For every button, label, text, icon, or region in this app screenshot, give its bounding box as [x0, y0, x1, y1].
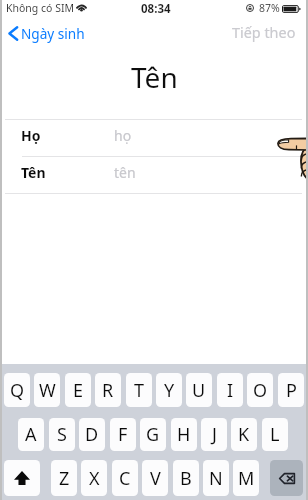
staticText: B	[180, 466, 192, 491]
button[interactable]: H	[171, 418, 197, 451]
staticText: tên	[114, 163, 136, 182]
button[interactable]: Z	[51, 460, 77, 496]
button[interactable]: V	[142, 460, 168, 496]
staticText: C	[119, 466, 131, 491]
staticText: R	[102, 378, 114, 403]
staticText: N	[209, 466, 223, 491]
staticText: Tên	[131, 58, 178, 96]
button[interactable]: B	[173, 460, 199, 496]
button[interactable]: Tiếp theo	[226, 20, 302, 46]
button[interactable]: Backspace	[270, 460, 303, 496]
button[interactable]: Tên	[0, 157, 308, 193]
button[interactable]: E	[65, 373, 91, 407]
button[interactable]: U	[186, 373, 212, 407]
button[interactable]: M	[233, 460, 259, 496]
staticText: U	[192, 378, 206, 403]
button[interactable]: Q	[4, 373, 30, 407]
button[interactable]: X	[81, 460, 107, 496]
button[interactable]: T	[126, 373, 152, 407]
button[interactable]: W	[34, 373, 60, 407]
staticText: 08:34	[141, 1, 171, 16]
button[interactable]: C	[112, 460, 138, 496]
staticText: Y	[164, 378, 175, 403]
button[interactable]: A	[18, 418, 44, 451]
staticText: 87%	[259, 1, 280, 15]
staticText: K	[238, 422, 250, 447]
button[interactable]: D	[79, 418, 105, 451]
staticText: T	[134, 378, 145, 403]
button[interactable]: N	[203, 460, 229, 496]
button[interactable]: R	[95, 373, 121, 407]
staticText: Tiếp theo	[232, 23, 296, 43]
button[interactable]: Họ	[0, 120, 308, 156]
staticText: X	[89, 466, 100, 491]
staticText: Họ	[21, 126, 41, 145]
button[interactable]: Shift	[4, 460, 40, 496]
staticText: L	[270, 422, 280, 447]
staticText: H	[177, 422, 191, 447]
staticText: I	[227, 378, 234, 403]
staticText: W	[39, 378, 56, 403]
staticText: Không có SIM	[6, 1, 74, 15]
button[interactable]: J	[201, 418, 227, 451]
button[interactable]: K	[231, 418, 257, 451]
button[interactable]: S	[49, 418, 75, 451]
staticText: A	[25, 422, 37, 447]
staticText: Q	[10, 378, 25, 403]
button[interactable]: F	[110, 418, 136, 451]
staticText: S	[57, 422, 67, 447]
button[interactable]: P	[278, 373, 304, 407]
staticText: O	[253, 378, 268, 403]
button[interactable]: L	[262, 418, 288, 451]
staticText: G	[146, 422, 160, 447]
staticText: P	[286, 378, 297, 403]
staticText: Z	[59, 466, 70, 491]
staticText: Tên	[21, 163, 46, 182]
staticText: Ngày sinh	[21, 24, 85, 43]
staticText: F	[118, 422, 128, 447]
staticText: họ	[114, 126, 132, 145]
staticText: D	[85, 422, 99, 447]
staticText: E	[73, 378, 84, 403]
staticText: M	[238, 466, 255, 491]
button[interactable]: Ngày sinh	[3, 21, 93, 46]
button[interactable]: O	[247, 373, 273, 407]
staticText: V	[150, 466, 161, 491]
button[interactable]: I	[217, 373, 243, 407]
button[interactable]: G	[140, 418, 166, 451]
button[interactable]: Y	[156, 373, 182, 407]
staticText: J	[212, 422, 217, 447]
